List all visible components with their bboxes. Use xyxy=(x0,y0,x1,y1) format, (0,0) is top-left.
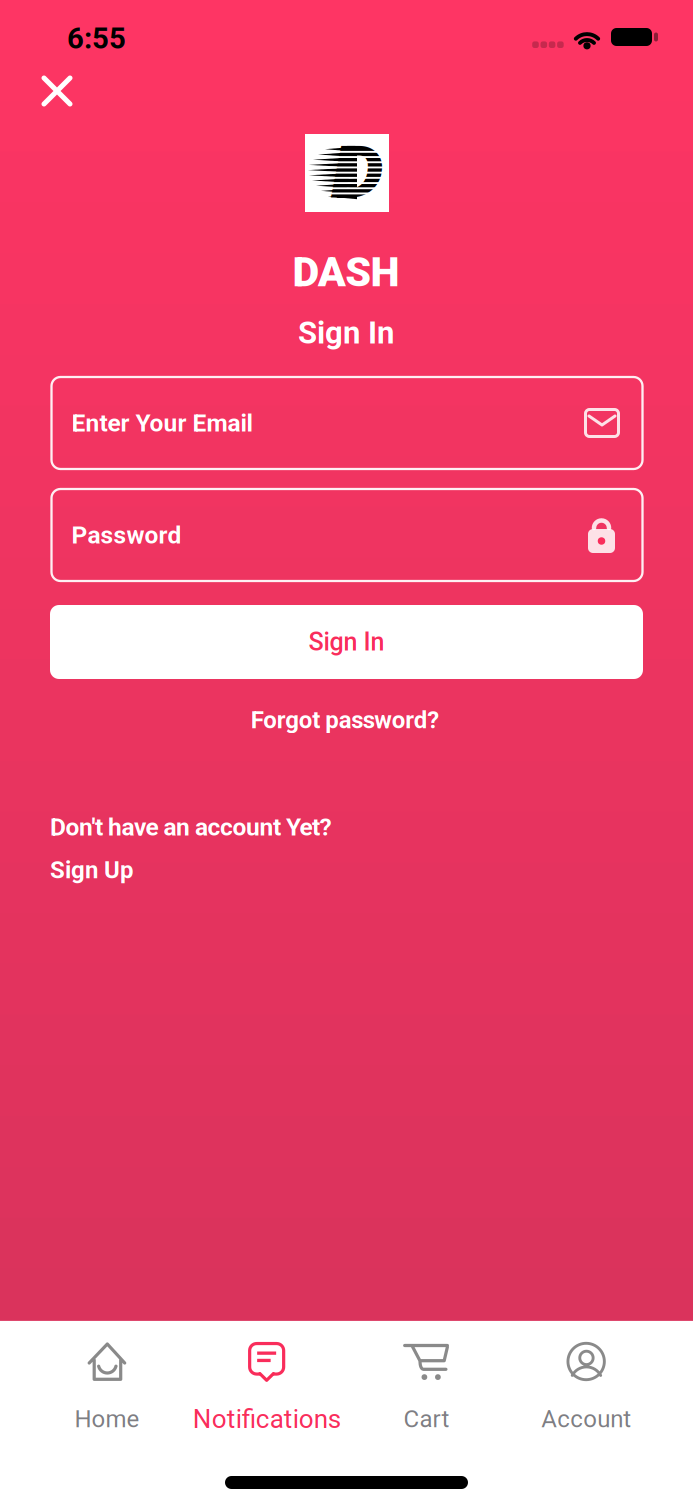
button[interactable]: Enter Your Email xyxy=(51,377,642,469)
button[interactable]: Sign Up xyxy=(50,856,134,884)
staticText: Don't have an account Yet? xyxy=(50,813,331,841)
button[interactable]: Account xyxy=(506,1336,666,1440)
button[interactable]: Sign In xyxy=(50,605,643,679)
staticText: 6:55 xyxy=(67,21,126,56)
staticText: Account xyxy=(541,1405,631,1433)
staticText: D xyxy=(334,131,379,215)
staticText: Sign In xyxy=(308,627,384,657)
staticText: Cart xyxy=(403,1405,449,1433)
staticText: Notifications xyxy=(193,1404,341,1434)
staticText: Sign In xyxy=(298,315,394,351)
button[interactable]: Close xyxy=(35,69,79,113)
staticText: Enter Your Email xyxy=(71,409,252,437)
button[interactable]: Home xyxy=(27,1336,187,1440)
staticText: Forgot password? xyxy=(251,706,439,734)
staticText: DASH xyxy=(292,248,400,296)
button[interactable]: Cart xyxy=(346,1336,506,1440)
staticText: Sign Up xyxy=(50,856,134,884)
button[interactable]: Forgot password? xyxy=(251,706,439,734)
staticText: Home xyxy=(74,1405,139,1433)
staticText: Password xyxy=(71,521,181,549)
button[interactable]: Password xyxy=(51,489,642,581)
button[interactable]: Notifications xyxy=(187,1336,347,1440)
